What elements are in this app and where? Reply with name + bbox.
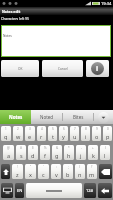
button[interactable]: OK: [1, 60, 39, 77]
button[interactable]: *: [64, 145, 74, 160]
staticText: &: [56, 146, 59, 150]
button[interactable]: #: [16, 145, 26, 160]
button[interactable]: ?: [87, 164, 97, 179]
staticText: @: [7, 146, 10, 150]
button[interactable]: Noted: [31, 110, 62, 124]
staticText: 19:34: [101, 1, 112, 6]
staticText: Notes: [9, 114, 23, 120]
button[interactable]: 6: [59, 126, 68, 141]
button[interactable]: Notes: [1, 25, 111, 57]
staticText: a: [7, 152, 11, 159]
staticText: w: [16, 133, 21, 140]
staticText: Cancel: [58, 67, 68, 71]
staticText: *: [68, 146, 70, 150]
staticText: t: [52, 133, 54, 140]
button[interactable]: 12#: [84, 183, 96, 198]
staticText: 12#: [86, 188, 94, 193]
staticText: Notes edit: [2, 9, 21, 14]
button[interactable]: 7: [70, 126, 79, 141]
button[interactable]: +: [88, 145, 98, 160]
staticText: EN: [17, 188, 23, 193]
button[interactable]: /: [75, 164, 85, 179]
staticText: x: [29, 171, 32, 178]
staticText: !: [17, 165, 18, 169]
staticText: 3: [29, 127, 31, 131]
button[interactable]: Info: [86, 60, 109, 77]
staticText: (: [105, 146, 106, 150]
staticText: -: [81, 146, 82, 150]
staticText: OK: [18, 67, 23, 71]
button[interactable]: More suggestions: [94, 110, 113, 124]
staticText: o: [95, 133, 99, 140]
staticText: :: [56, 165, 57, 169]
button[interactable]: @: [3, 145, 14, 160]
staticText: ?: [91, 165, 93, 169]
staticText: 6: [63, 127, 65, 131]
staticText: /: [79, 165, 81, 169]
staticText: Bites: [73, 114, 84, 120]
button[interactable]: [1, 164, 10, 179]
staticText: 8: [85, 127, 87, 131]
staticText: n: [78, 171, 82, 178]
button[interactable]: 5: [48, 126, 57, 141]
staticText: v: [55, 171, 58, 178]
button[interactable]: &: [52, 145, 62, 160]
button[interactable]: [98, 183, 112, 198]
button[interactable]: Bites: [63, 110, 93, 124]
staticText: e: [28, 133, 32, 140]
button[interactable]: EN: [15, 183, 24, 198]
staticText: u: [73, 133, 77, 140]
button[interactable]: -: [76, 145, 86, 160]
button[interactable]: %: [40, 145, 50, 160]
button[interactable]: 2: [13, 126, 23, 141]
staticText: f: [44, 152, 46, 159]
staticText: 7: [74, 127, 76, 131]
staticText: d: [31, 152, 35, 159]
button[interactable]: (: [100, 145, 110, 160]
button[interactable]: 8: [81, 126, 90, 141]
staticText: +: [92, 146, 94, 150]
button[interactable]: 4: [37, 126, 46, 141]
staticText: 1: [5, 127, 7, 131]
staticText: $: [32, 146, 34, 150]
button[interactable]: 9: [92, 126, 101, 141]
staticText: Characters left 95: [1, 16, 29, 21]
staticText: s: [20, 152, 23, 159]
staticText: 4: [41, 127, 43, 131]
staticText: r: [40, 133, 43, 140]
staticText: 5: [52, 127, 54, 131]
button[interactable]: 3: [25, 126, 35, 141]
staticText: 2: [17, 127, 19, 131]
button[interactable]: Cancel: [42, 60, 83, 77]
staticText: #: [20, 146, 22, 150]
button[interactable]: [99, 164, 112, 179]
staticText: j: [80, 152, 82, 159]
button[interactable]: $: [28, 145, 38, 160]
button[interactable]: !: [12, 164, 23, 179]
staticText: i: [96, 64, 99, 74]
button[interactable]: Notes: [0, 110, 31, 124]
staticText: ": [30, 165, 32, 169]
staticText: 9: [96, 127, 98, 131]
button[interactable]: :: [51, 164, 61, 179]
staticText: m: [89, 171, 95, 178]
button[interactable]: [1, 183, 13, 198]
button[interactable]: 1: [1, 126, 11, 141]
button[interactable]: ": [25, 164, 36, 179]
staticText: p: [106, 133, 110, 140]
staticText: g: [55, 152, 59, 159]
button[interactable]: [26, 183, 82, 198]
button[interactable]: ;: [63, 164, 73, 179]
staticText: %: [44, 146, 47, 150]
button[interactable]: ': [38, 164, 49, 179]
button[interactable]: 0: [103, 126, 112, 141]
staticText: i: [85, 133, 87, 140]
staticText: ': [43, 165, 44, 169]
staticText: l: [104, 152, 106, 159]
staticText: b: [66, 171, 70, 178]
staticText: z: [16, 171, 19, 178]
staticText: Noted: [40, 114, 54, 120]
staticText: h: [67, 152, 71, 159]
staticText: ;: [68, 165, 69, 169]
staticText: 0: [107, 127, 109, 131]
